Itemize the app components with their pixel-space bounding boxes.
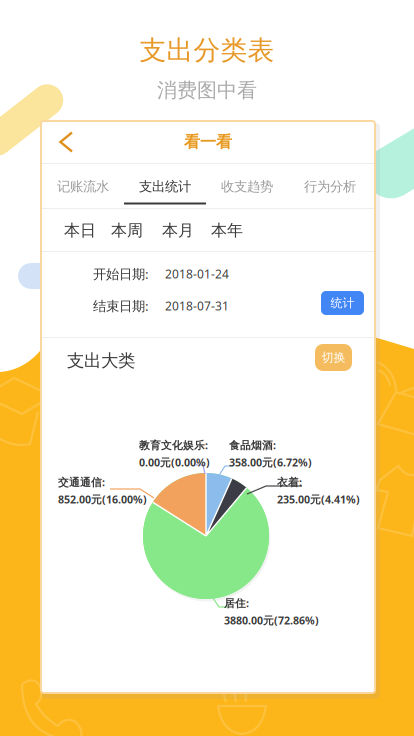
staticText: 行为分析: [304, 178, 356, 195]
staticText: 衣着:: [277, 475, 302, 489]
staticText: 消费图中看: [157, 78, 257, 103]
staticText: 食品烟酒:: [229, 438, 276, 452]
button[interactable]: 记账流水: [42, 164, 124, 209]
button[interactable]: 本日: [57, 209, 103, 252]
staticText: 统计: [330, 296, 354, 310]
staticText: 教育文化娱乐:: [139, 438, 208, 452]
staticText: 支出大类: [67, 350, 135, 371]
staticText: 2018-01-24: [165, 266, 229, 282]
button[interactable]: 本周: [104, 209, 150, 252]
button[interactable]: 本月: [155, 209, 201, 252]
staticText: 本年: [211, 221, 243, 240]
staticText: 本日: [64, 221, 96, 240]
staticText: 开始日期:: [93, 265, 149, 283]
staticText: 358.00元(6.72%): [229, 455, 312, 469]
staticText: 支出统计: [139, 178, 191, 195]
staticText: 看一看: [184, 132, 232, 152]
staticText: 3880.00元(72.86%): [224, 613, 319, 627]
staticText: 记账流水: [57, 178, 109, 195]
button[interactable]: Back: [47, 121, 85, 163]
staticText: 本月: [162, 221, 194, 240]
staticText: 2018-07-31: [165, 298, 229, 314]
staticText: 支出分类表: [139, 34, 274, 67]
button[interactable]: 支出统计: [124, 164, 206, 209]
staticText: 收支趋势: [221, 178, 273, 195]
staticText: 居住:: [224, 596, 249, 610]
staticText: 852.00元(16.00%): [58, 492, 147, 506]
staticText: 切换: [321, 350, 345, 365]
button[interactable]: 收支趋势: [206, 164, 288, 209]
button[interactable]: 本年: [204, 209, 250, 252]
staticText: 结束日期:: [93, 297, 149, 315]
staticText: 235.00元(4.41%): [277, 492, 360, 506]
button[interactable]: 切换: [315, 344, 352, 371]
staticText: 交通通信:: [58, 475, 105, 489]
staticText: 0.00元(0.00%): [139, 455, 210, 469]
staticText: 本周: [111, 221, 143, 240]
button[interactable]: 行为分析: [289, 164, 371, 209]
button[interactable]: 统计: [321, 291, 364, 315]
